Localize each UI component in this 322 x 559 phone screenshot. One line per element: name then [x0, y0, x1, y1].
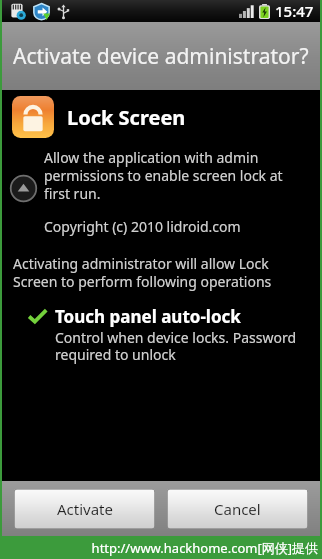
staticText: http://www.hackhome.com[网侠]提供: [0, 539, 318, 557]
staticText: Allow the application with admin permiss…: [44, 148, 306, 203]
staticText: Lock Screen: [67, 104, 186, 131]
staticText: Copyright (c) 2010 lidroid.com: [44, 217, 241, 236]
staticText: Control when device locks. Password requ…: [55, 328, 308, 364]
staticText: 15:47: [275, 1, 314, 21]
button[interactable]: Activate: [14, 489, 155, 529]
button[interactable]: Collapse: [9, 174, 38, 203]
button[interactable]: Cancel: [167, 489, 308, 529]
staticText: Activate device administrator?: [13, 42, 309, 71]
staticText: Cancel: [214, 499, 261, 519]
staticText: Activating administrator will allow Lock…: [13, 254, 308, 291]
staticText: Touch panel auto-lock: [55, 305, 241, 328]
staticText: Activate: [57, 499, 113, 519]
